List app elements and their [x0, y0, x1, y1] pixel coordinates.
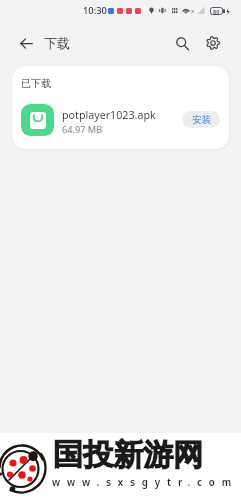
staticText: 安装: [192, 114, 211, 126]
button[interactable]: 安装: [182, 111, 220, 128]
staticText: 80: [213, 8, 220, 15]
staticText: 64.97 MB: [62, 123, 103, 136]
staticText: potplayer1023.apk: [62, 108, 156, 123]
button[interactable]: Search: [167, 28, 197, 58]
staticText: 下载: [44, 35, 70, 51]
staticText: 国投新游网: [53, 436, 203, 474]
staticText: www.sxsgytr.com: [52, 476, 238, 489]
staticText: 10:30: [83, 4, 107, 17]
staticText: 已下载: [21, 77, 51, 90]
button[interactable]: potplayer1023.apk: [12, 90, 229, 149]
button[interactable]: Back: [11, 28, 41, 58]
staticText: x: [191, 7, 195, 15]
button[interactable]: Settings: [198, 28, 228, 58]
